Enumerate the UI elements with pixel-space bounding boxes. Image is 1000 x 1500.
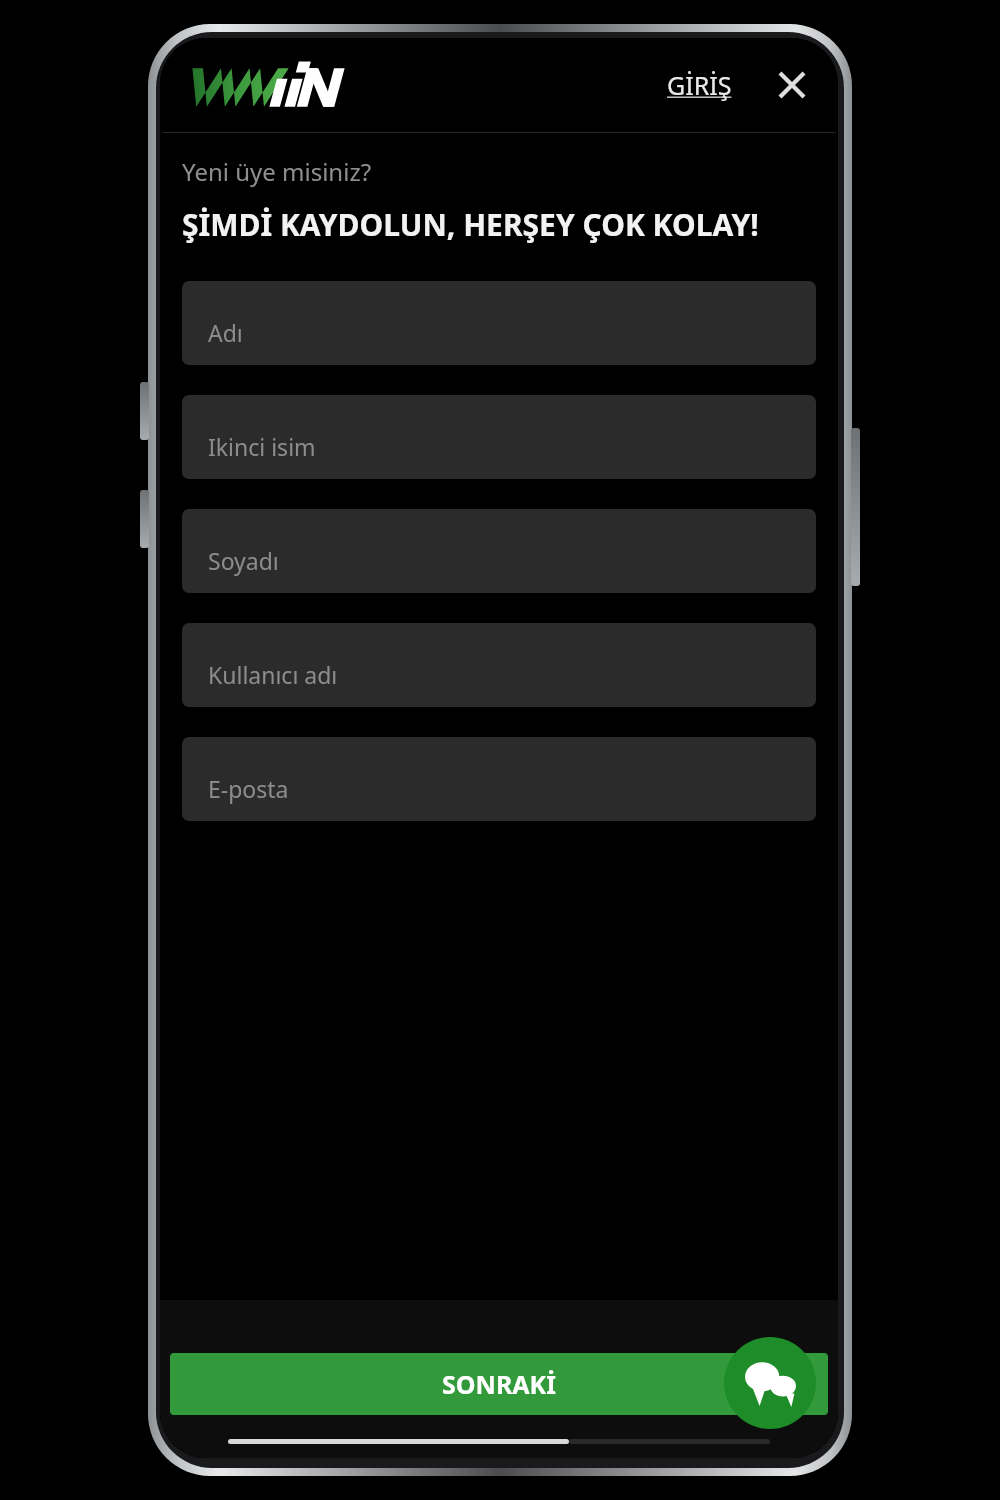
staticText: Ikinci isim (208, 431, 316, 462)
button[interactable]: Soyadı (182, 509, 816, 593)
staticText: Kullanıcı adı (208, 659, 338, 690)
button[interactable]: GİRİŞ (659, 58, 740, 112)
staticText: SONRAKİ (442, 1367, 556, 1401)
button[interactable]: Canlı destek sohbeti (724, 1337, 816, 1429)
staticText: Soyadı (208, 545, 279, 576)
staticText: Yeni üye misiniz? (182, 155, 372, 188)
staticText: GİRİŞ (667, 68, 732, 102)
button[interactable]: Kullanıcı adı (182, 623, 816, 707)
button[interactable]: Adı (182, 281, 816, 365)
staticText: Adı (208, 317, 243, 348)
button[interactable]: E-posta (182, 737, 816, 821)
staticText: E-posta (208, 773, 289, 804)
button[interactable]: Kapat (766, 59, 818, 111)
button[interactable]: Ikinci isim (182, 395, 816, 479)
button[interactable]: SONRAKİ (170, 1353, 828, 1415)
staticText: ŞİMDİ KAYDOLUN, HERŞEY ÇOK KOLAY! (182, 204, 759, 245)
